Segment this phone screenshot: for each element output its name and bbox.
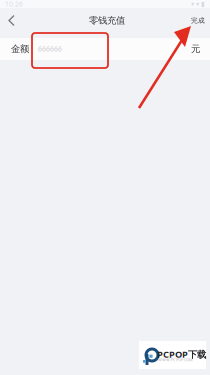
staticText: PCPOP下载 [157, 348, 206, 360]
staticText: 666666 [38, 45, 62, 53]
staticText: 完成 [191, 16, 205, 25]
button[interactable]: Back [0, 9, 21, 29]
staticText: WWW.PCPOP.COM [158, 357, 193, 362]
staticText: 元 [191, 43, 200, 55]
staticText: 零钱充值 [89, 15, 125, 26]
staticText: ▾ ▾ ▮ [191, 0, 205, 8]
button[interactable]: 完成 [191, 13, 210, 25]
button[interactable]: 金额 [0, 38, 210, 60]
staticText: 10:26 [5, 0, 23, 8]
staticText: 金额 [11, 43, 29, 55]
